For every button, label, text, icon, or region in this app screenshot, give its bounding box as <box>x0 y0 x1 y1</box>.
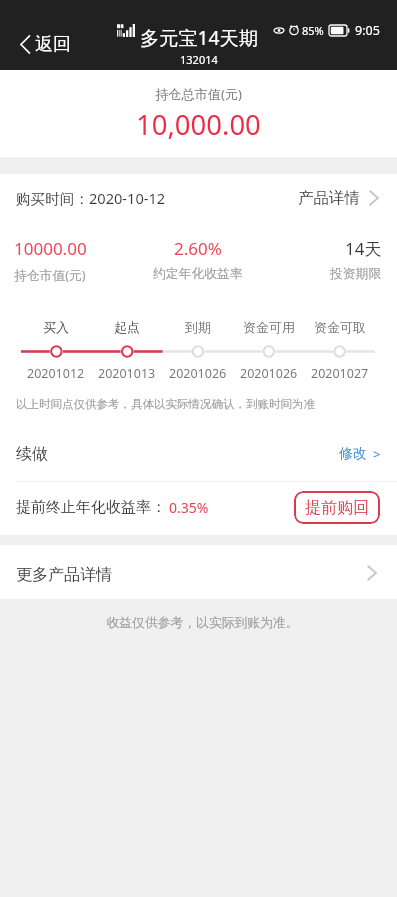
staticText: 收益仅供参考，以实际到账为准。 <box>4 615 397 631</box>
staticText: 9:05 <box>355 22 380 39</box>
staticText: 续做 <box>16 444 48 464</box>
staticText: 0.35% <box>169 498 209 517</box>
button[interactable]: 返回 <box>20 33 71 56</box>
staticText: 2.60% <box>174 237 222 260</box>
staticText: 10000.00 <box>14 237 87 260</box>
staticText: 资金可用 <box>243 319 295 335</box>
staticText: 返回 <box>35 33 71 56</box>
staticText: > <box>373 445 381 463</box>
staticText: 多元宝14天期 <box>140 24 258 50</box>
button[interactable]: 修改 <box>339 445 381 463</box>
staticText: 20201026 <box>169 365 227 382</box>
staticText: 产品详情 <box>298 188 360 208</box>
staticText: 买入 <box>43 319 69 335</box>
staticText: 提前购回 <box>305 498 369 518</box>
button[interactable]: 更多产品详情 <box>0 545 397 599</box>
button[interactable]: 产品详情 <box>298 188 379 208</box>
staticText: 14天 <box>345 237 382 260</box>
staticText: 到期 <box>185 319 211 335</box>
staticText: 10,000.00 <box>136 106 261 143</box>
staticText: 提前终止年化收益率： <box>16 498 166 517</box>
button[interactable]: 提前购回 <box>294 491 380 524</box>
staticText: 修改 <box>339 445 367 463</box>
staticText: 132014 <box>180 52 218 67</box>
staticText: 购买时间：2020-10-12 <box>16 188 166 208</box>
staticText: 起点 <box>114 319 140 335</box>
staticText: 20201026 <box>240 365 298 382</box>
staticText: 更多产品详情 <box>16 565 112 585</box>
staticText: 资金可取 <box>314 319 366 335</box>
staticText: 20201027 <box>311 365 369 382</box>
staticText: 投资期限 <box>330 266 382 282</box>
staticText: 持仓市值(元) <box>14 266 86 283</box>
staticText: 持仓总市值(元) <box>155 85 243 103</box>
staticText: 20201012 <box>27 365 85 382</box>
staticText: 以上时间点仅供参考，具体以实际情况确认，到账时间为准 <box>16 397 315 411</box>
staticText: 20201013 <box>98 365 156 382</box>
staticText: 约定年化收益率 <box>153 266 243 282</box>
staticText: 85% <box>302 23 324 38</box>
